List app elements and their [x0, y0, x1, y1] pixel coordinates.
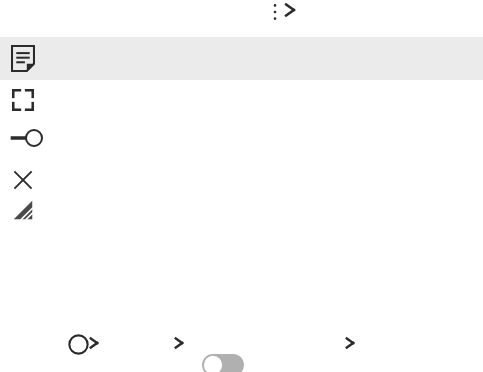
button[interactable]: Close	[12, 169, 34, 191]
button[interactable]: Note	[11, 45, 35, 72]
button[interactable]: Open	[84, 333, 104, 353]
button[interactable]: Toggle	[202, 354, 244, 372]
button[interactable]: Crop	[12, 89, 34, 111]
button[interactable]: Note	[0, 37, 483, 80]
button[interactable]: Open section	[340, 333, 360, 353]
button[interactable]: Open item	[169, 333, 189, 353]
button[interactable]: Select	[68, 334, 89, 355]
button[interactable]: Adjust	[10, 128, 44, 148]
button[interactable]: Signal	[12, 199, 34, 221]
button[interactable]: More options	[265, 0, 285, 24]
button[interactable]: Expand	[278, 0, 302, 22]
